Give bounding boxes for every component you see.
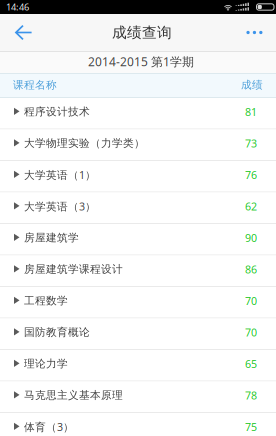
button[interactable]: 大学英语（1） [0, 161, 276, 192]
button[interactable]: More [228, 14, 276, 51]
button[interactable]: 房屋建筑学 [0, 224, 276, 255]
staticText: 成绩 [241, 78, 263, 91]
staticText: 65 [245, 357, 257, 371]
button[interactable]: 工程数学 [0, 287, 276, 318]
button[interactable]: 大学英语（3） [0, 192, 276, 224]
button[interactable]: 马克思主义基本原理 [0, 381, 276, 413]
staticText: 86 [245, 262, 257, 276]
staticText: 程序设计技术 [24, 105, 90, 118]
staticText: 房屋建筑学课程设计 [24, 263, 123, 276]
button[interactable]: 房屋建筑学课程设计 [0, 255, 276, 287]
staticText: 73 [245, 136, 257, 150]
staticText: 70 [245, 325, 257, 339]
staticText: 大学英语（3） [24, 199, 96, 213]
staticText: 75 [245, 420, 257, 434]
staticText: 大学英语（1） [24, 168, 96, 182]
button[interactable]: Back [0, 14, 48, 51]
staticText: 成绩查询 [112, 23, 172, 41]
staticText: 课程名称 [13, 78, 57, 91]
staticText: 76 [245, 168, 257, 182]
staticText: 62 [245, 199, 257, 213]
button[interactable]: 理论力学 [0, 350, 276, 381]
staticText: 70 [245, 294, 257, 308]
button[interactable]: 大学物理实验（力学类） [0, 129, 276, 161]
button[interactable]: 程序设计技术 [0, 98, 276, 129]
staticText: 体育（3） [24, 420, 74, 434]
staticText: 理论力学 [24, 357, 68, 370]
staticText: 14:46 [6, 1, 29, 13]
staticText: 81 [245, 105, 257, 119]
staticText: 国防教育概论 [24, 326, 90, 339]
staticText: 2014-2015 第1学期 [88, 53, 194, 69]
button[interactable]: 体育（3） [0, 413, 276, 436]
staticText: 90 [245, 231, 257, 245]
staticText: 马克思主义基本原理 [24, 389, 123, 402]
staticText: 大学物理实验（力学类） [24, 137, 145, 150]
staticText: 78 [245, 388, 257, 402]
button[interactable]: 国防教育概论 [0, 318, 276, 350]
staticText: 房屋建筑学 [24, 231, 79, 244]
staticText: 工程数学 [24, 294, 68, 307]
